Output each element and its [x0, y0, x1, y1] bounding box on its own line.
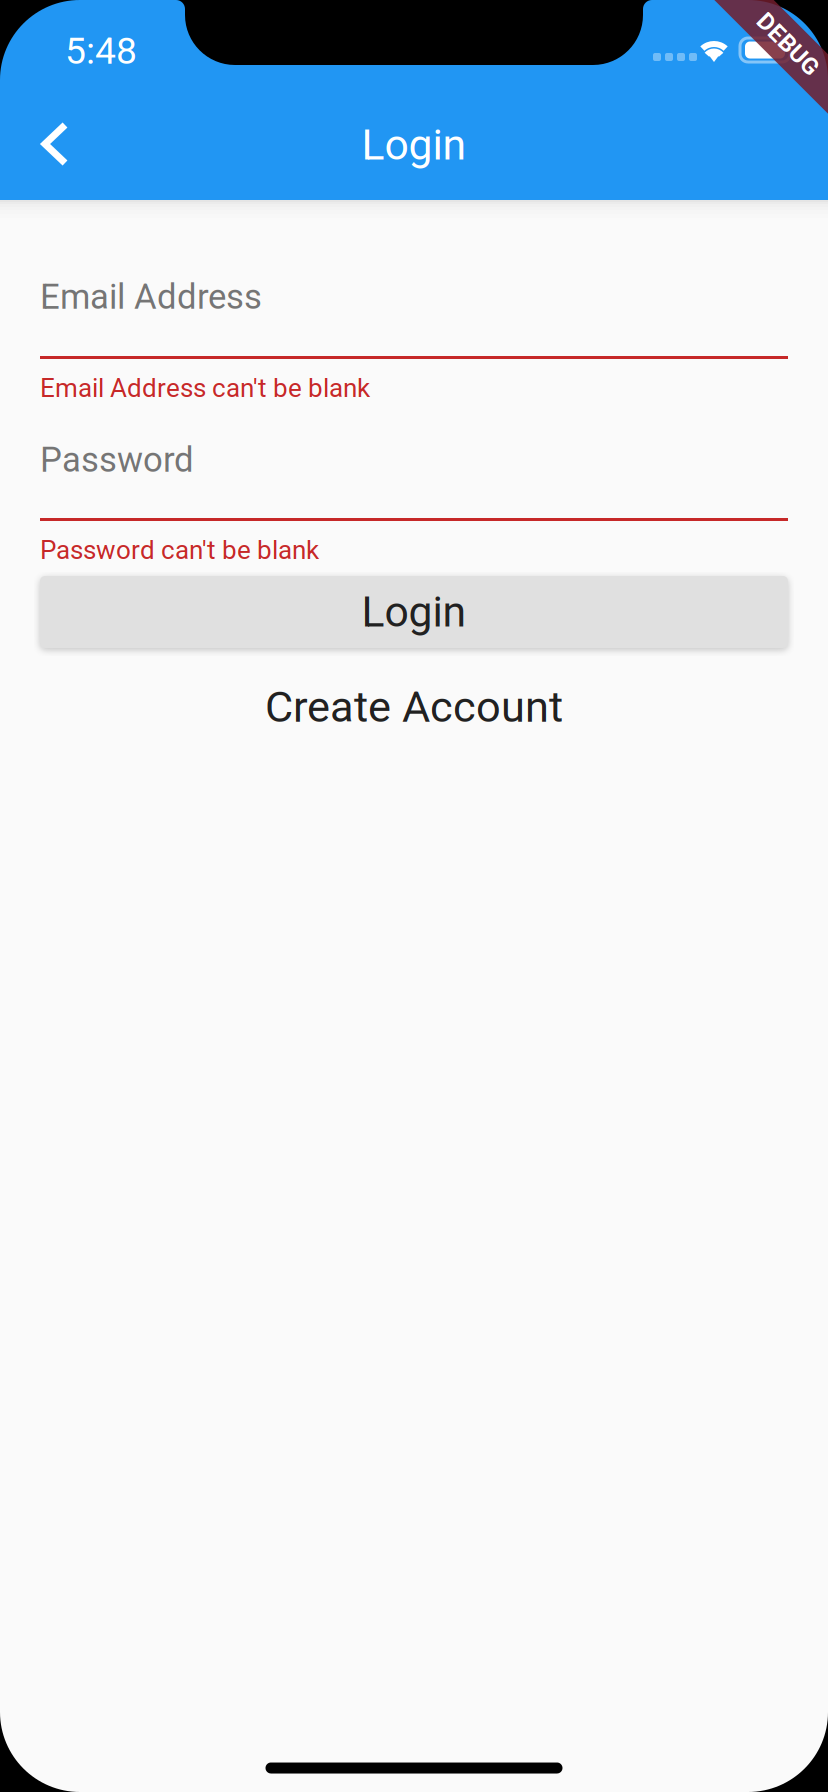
staticText: DEBUG: [749, 30, 826, 58]
staticText: Password: [40, 440, 194, 480]
button[interactable]: Back: [0, 95, 110, 195]
button[interactable]: Password: [40, 438, 788, 521]
button[interactable]: Create Account: [40, 676, 788, 738]
staticText: Password can't be blank: [40, 535, 319, 565]
staticText: Email Address can't be blank: [40, 373, 370, 403]
staticText: Login: [361, 120, 466, 170]
staticText: 5:48: [65, 29, 137, 73]
staticText: Email Address: [40, 277, 262, 317]
button[interactable]: Login: [40, 576, 788, 648]
button[interactable]: Email Address: [40, 275, 788, 359]
staticText: Create Account: [265, 682, 563, 732]
staticText: Login: [361, 587, 466, 637]
